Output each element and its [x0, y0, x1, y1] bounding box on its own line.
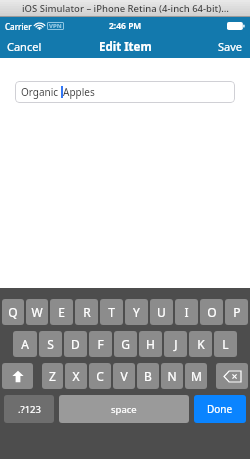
button[interactable]: A: [13, 331, 37, 357]
staticText: J: [174, 336, 178, 352]
staticText: N: [167, 368, 177, 384]
button[interactable]: Q: [2, 299, 24, 325]
staticText: iOS Simulator – iPhone Retina (4-inch 64…: [22, 2, 229, 15]
button[interactable]: D: [64, 331, 87, 357]
button[interactable]: Save: [211, 35, 250, 58]
button[interactable]: Backspace: [216, 363, 248, 389]
button[interactable]: E: [50, 299, 73, 325]
button[interactable]: H: [139, 331, 162, 357]
staticText: Cancel: [7, 39, 42, 54]
button[interactable]: V: [113, 363, 135, 389]
button[interactable]: K: [189, 331, 212, 357]
staticText: M: [191, 368, 202, 384]
staticText: W: [31, 304, 43, 320]
button[interactable]: I: [175, 299, 198, 325]
staticText: S: [47, 336, 54, 352]
button[interactable]: R: [75, 299, 98, 325]
button[interactable]: O: [200, 299, 223, 325]
staticText: I: [184, 304, 189, 320]
staticText: Carrier: [5, 21, 32, 32]
button[interactable]: P: [225, 299, 248, 325]
button[interactable]: X: [65, 363, 87, 389]
button[interactable]: N: [161, 363, 183, 389]
staticText: L: [222, 336, 229, 352]
button[interactable]: Cancel: [0, 35, 49, 58]
button[interactable]: B: [137, 363, 159, 389]
button[interactable]: F: [89, 331, 112, 357]
staticText: 2:46 PM: [109, 20, 142, 32]
staticText: P: [233, 304, 241, 320]
staticText: V: [120, 368, 128, 384]
staticText: B: [144, 368, 152, 384]
staticText: space: [111, 403, 137, 416]
button[interactable]: Y: [125, 299, 148, 325]
button[interactable]: Z: [42, 363, 63, 389]
staticText: Save: [218, 39, 243, 54]
staticText: Z: [49, 368, 56, 384]
staticText: U: [157, 304, 166, 320]
staticText: Organic: [21, 85, 61, 99]
button[interactable]: G: [114, 331, 137, 357]
staticText: K: [197, 336, 205, 352]
button[interactable]: U: [150, 299, 173, 325]
staticText: C: [96, 368, 104, 384]
staticText: O: [207, 304, 217, 320]
staticText: H: [146, 336, 155, 352]
button[interactable]: S: [39, 331, 62, 357]
button[interactable]: T: [100, 299, 123, 325]
button[interactable]: space: [59, 395, 189, 423]
staticText: F: [97, 336, 104, 352]
staticText: Edit Item: [99, 39, 152, 55]
staticText: Q: [8, 304, 18, 320]
staticText: R: [83, 304, 91, 320]
button[interactable]: Done: [194, 395, 246, 423]
staticText: Y: [133, 304, 140, 320]
button[interactable]: W: [26, 299, 48, 325]
button[interactable]: C: [89, 363, 111, 389]
button[interactable]: Shift: [2, 363, 33, 389]
button[interactable]: J: [164, 331, 187, 357]
staticText: E: [58, 304, 65, 320]
staticText: .?123: [18, 403, 41, 416]
staticText: A: [21, 336, 29, 352]
staticText: Done: [207, 402, 233, 416]
button[interactable]: Organic: [15, 81, 235, 103]
button[interactable]: M: [185, 363, 207, 389]
staticText: D: [71, 336, 80, 352]
staticText: VPN: [49, 22, 62, 30]
staticText: G: [121, 336, 130, 352]
staticText: T: [108, 304, 115, 320]
staticText: X: [72, 368, 80, 384]
button[interactable]: .?123: [4, 395, 54, 423]
button[interactable]: L: [214, 331, 237, 357]
staticText: Apples: [63, 85, 95, 99]
